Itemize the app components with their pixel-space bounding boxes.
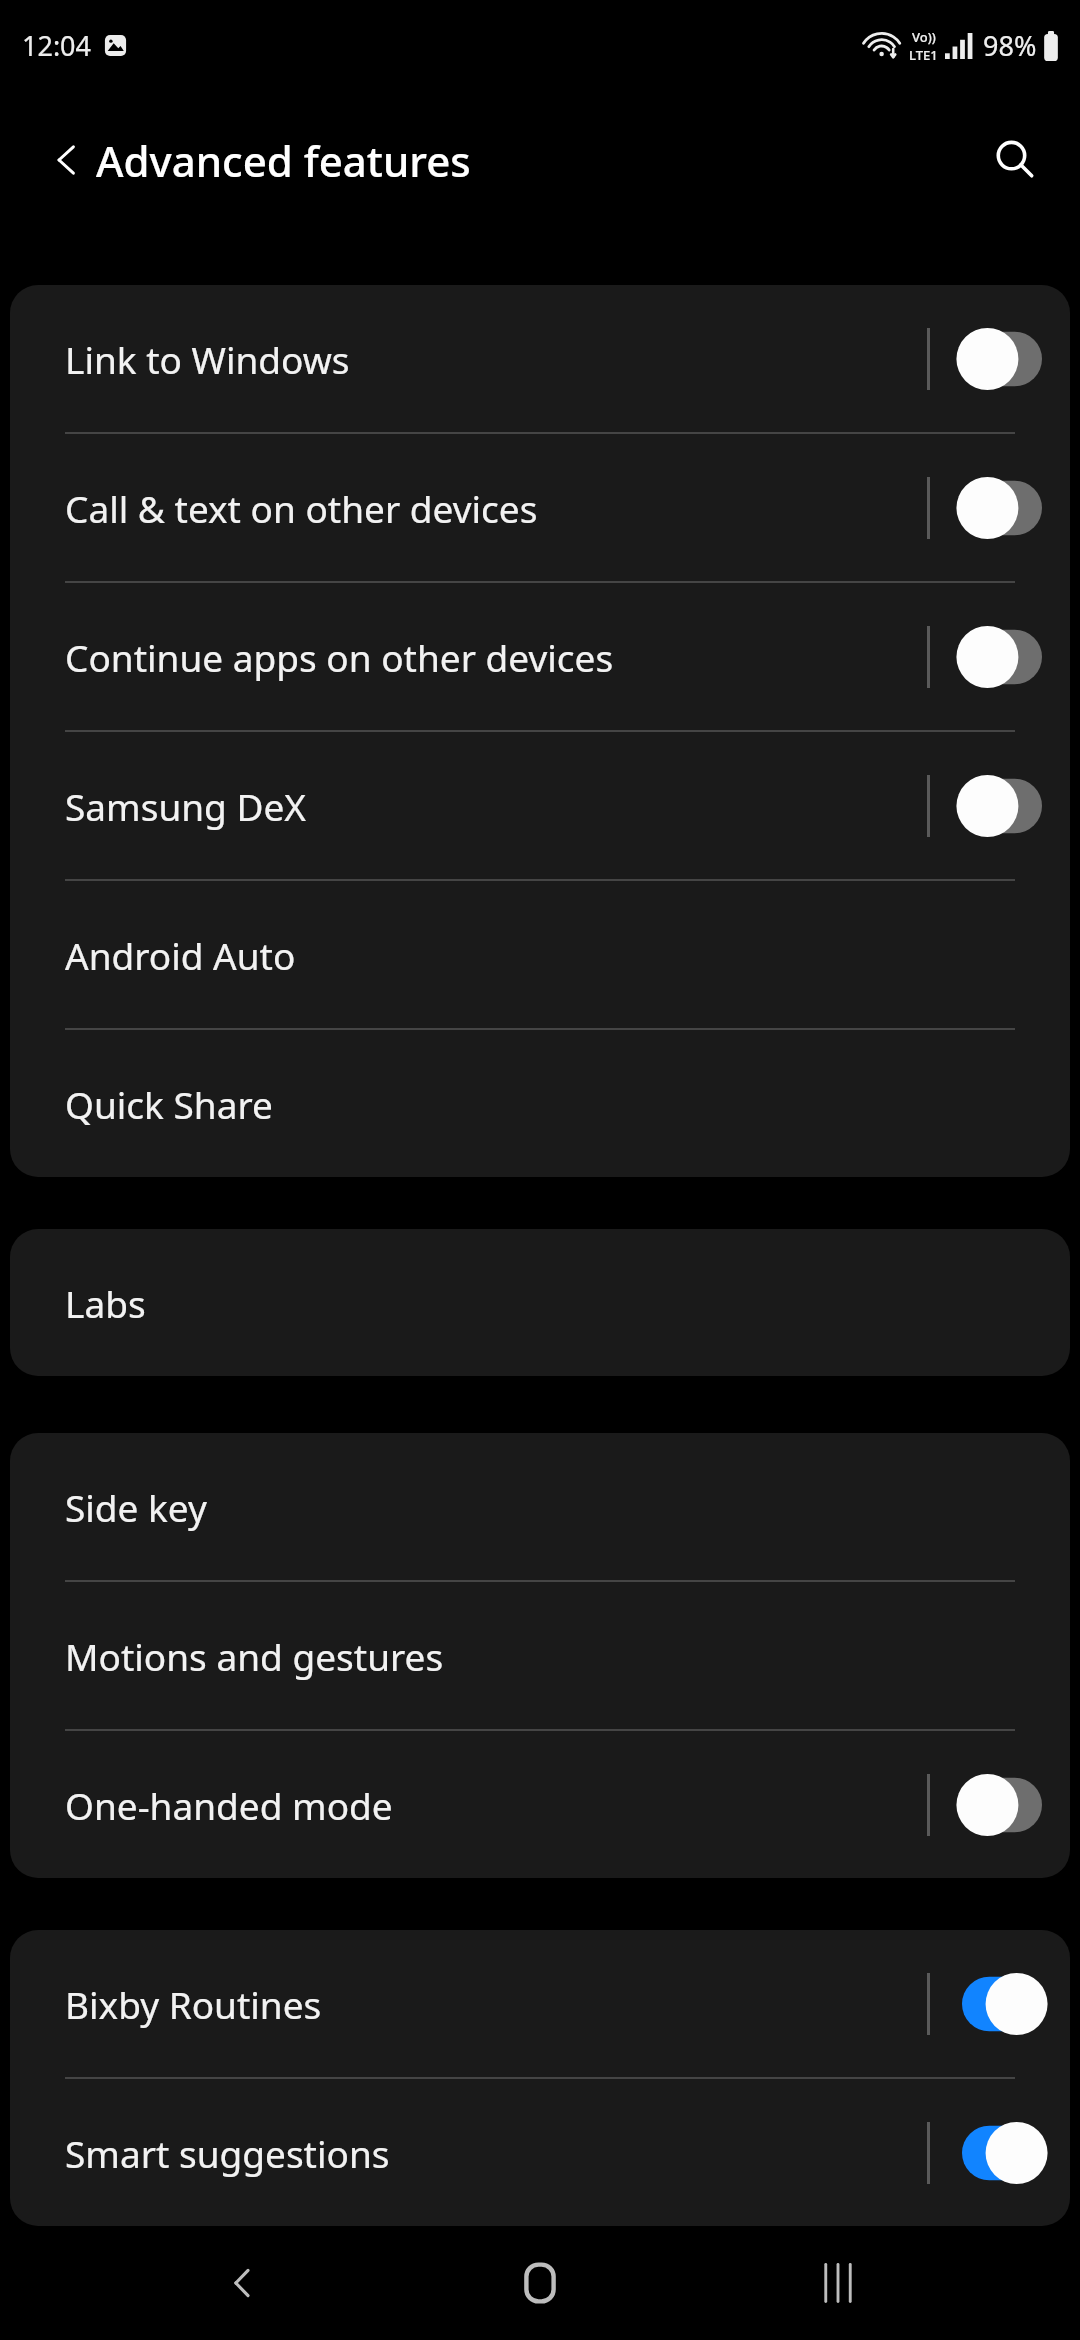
button[interactable]: Link to Windows	[10, 285, 1070, 432]
button[interactable]: Samsung DeX	[10, 732, 1070, 879]
button[interactable]: One-handed mode	[10, 1731, 1070, 1878]
staticText: Link to Windows	[65, 334, 927, 384]
staticText: Quick Share	[65, 1079, 1030, 1129]
staticText: Samsung DeX	[65, 781, 927, 831]
button[interactable]: Back	[188, 2228, 298, 2338]
staticText: Advanced features	[96, 132, 471, 189]
button[interactable]: Motions and gestures	[10, 1582, 1070, 1729]
staticText: 12:04	[22, 27, 92, 64]
button[interactable]: Link to Windows off	[952, 328, 1052, 390]
button[interactable]: Recent apps	[783, 2228, 893, 2338]
staticText: Labs	[65, 1278, 1030, 1328]
button[interactable]: Samsung DeX off	[952, 775, 1052, 837]
button[interactable]: Quick Share	[10, 1030, 1070, 1177]
staticText: Side key	[65, 1482, 1030, 1532]
button[interactable]: Continue apps on other devices	[10, 583, 1070, 730]
button[interactable]: Labs	[10, 1229, 1070, 1376]
staticText: Call & text on other devices	[65, 483, 927, 533]
staticText: Continue apps on other devices	[65, 632, 927, 682]
staticText: 98%	[983, 27, 1037, 64]
button[interactable]: Smart suggestions on	[952, 2122, 1052, 2184]
button[interactable]: Android Auto	[10, 881, 1070, 1028]
staticText: Android Auto	[65, 930, 1030, 980]
button[interactable]: Smart suggestions	[10, 2079, 1070, 2226]
staticText: Motions and gestures	[65, 1631, 1030, 1681]
staticText: Bixby Routines	[65, 1979, 927, 2029]
button[interactable]: Call & text on other devices off	[952, 477, 1052, 539]
button[interactable]: Home	[485, 2228, 595, 2338]
button[interactable]: Continue apps on other devices off	[952, 626, 1052, 688]
button[interactable]: Back	[30, 123, 104, 197]
button[interactable]: Call & text on other devices	[10, 434, 1070, 581]
button[interactable]: Bixby Routines on	[952, 1973, 1052, 2035]
button[interactable]: One-handed mode off	[952, 1774, 1052, 1836]
staticText: LTE1	[909, 46, 938, 64]
staticText: One-handed mode	[65, 1780, 927, 1830]
button[interactable]: Bixby Routines	[10, 1930, 1070, 2077]
button[interactable]: Side key	[10, 1433, 1070, 1580]
staticText: Smart suggestions	[65, 2128, 927, 2178]
staticText: Vo))	[912, 28, 936, 46]
button[interactable]: Search	[978, 123, 1052, 197]
